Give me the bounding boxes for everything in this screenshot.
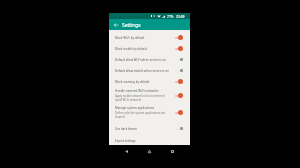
staticText: Settings <box>122 22 141 29</box>
staticText: Default allow mobile when screen is on <box>115 69 169 73</box>
button[interactable]: Block roaming by default <box>109 76 190 87</box>
staticText: 77% <box>167 14 174 18</box>
button[interactable]: Block Wi-Fi by default <box>109 32 190 43</box>
button[interactable]: Export settings <box>109 136 190 145</box>
staticText: Handle metered Wi-Fi networks <box>115 89 159 93</box>
staticText: Use dark theme <box>115 127 137 131</box>
button[interactable]: Block mobile by default <box>109 43 190 54</box>
button[interactable]: Default allow mobile when screen is on <box>109 65 190 76</box>
staticText: Block roaming by default <box>115 80 150 84</box>
staticText: Manage system applications <box>115 106 155 110</box>
staticText: Block Wi-Fi by default <box>115 36 145 40</box>
staticText: Export settings <box>115 139 136 143</box>
button[interactable]: Manage system applications <box>109 103 190 121</box>
button[interactable]: Handle metered Wi-Fi networks <box>109 87 190 103</box>
button[interactable]: Back <box>110 19 121 30</box>
staticText: Default allow Wi-Fi when screen is on <box>115 58 167 62</box>
button[interactable]: Home <box>144 146 155 157</box>
staticText: 23:59 <box>176 14 185 18</box>
staticText: Block mobile by default <box>115 47 148 51</box>
staticText: Apply mobile network rules to metered (p… <box>115 94 170 101</box>
button[interactable]: Use dark theme <box>109 121 190 136</box>
button[interactable]: Back <box>121 146 132 157</box>
button[interactable]: Recent apps <box>167 146 178 157</box>
button[interactable]: Default allow Wi-Fi when screen is on <box>109 54 190 65</box>
staticText: Define rules for system applications too… <box>115 111 170 118</box>
